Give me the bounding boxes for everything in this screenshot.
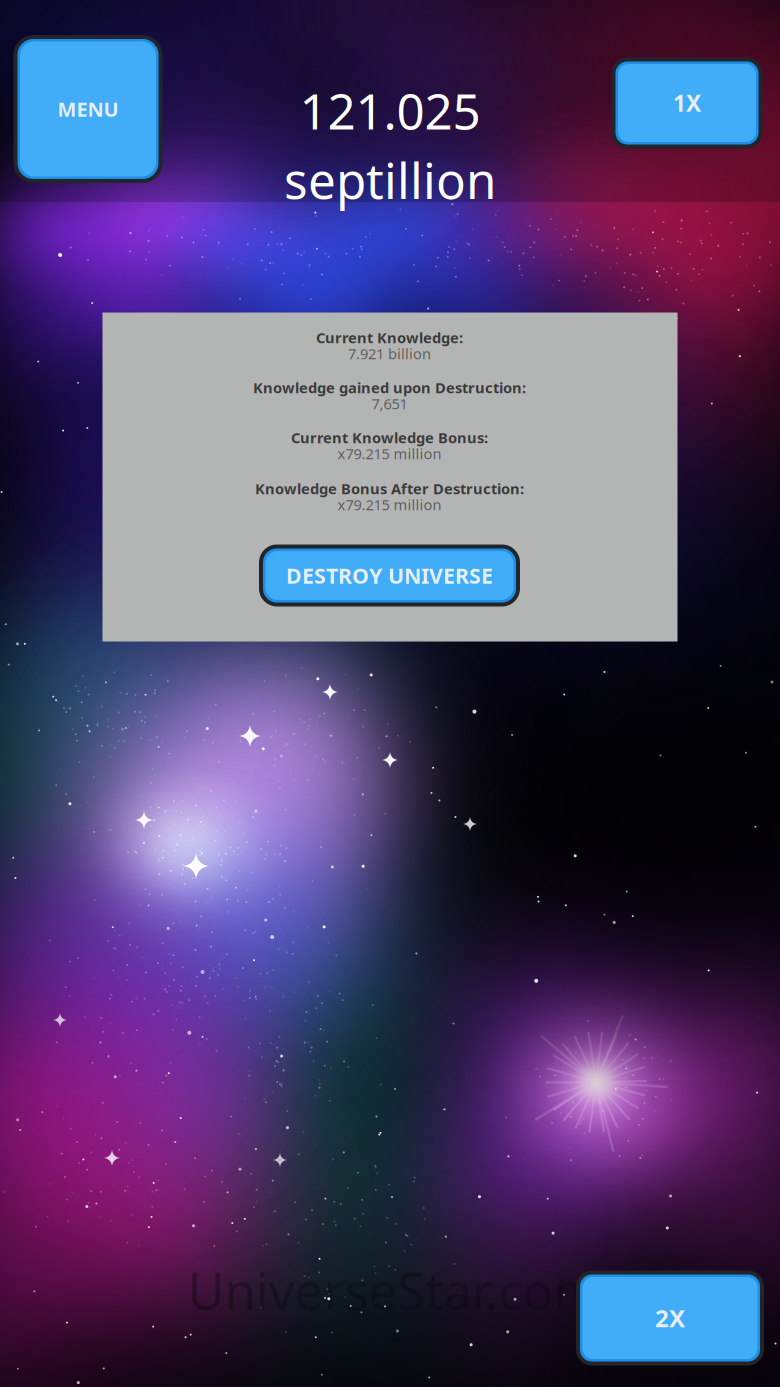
staticText: x79.215 million xyxy=(337,444,441,463)
staticText: 7,651 xyxy=(371,394,407,413)
staticText: Knowledge Bonus After Destruction: xyxy=(255,479,524,498)
staticText: Knowledge gained upon Destruction: xyxy=(253,378,526,397)
staticText: x79.215 million xyxy=(337,495,441,514)
staticText: 121.025 xyxy=(299,77,480,143)
staticText: 1X xyxy=(673,88,701,118)
staticText: UniverseStar.com xyxy=(187,1256,600,1324)
staticText: MENU xyxy=(57,96,118,122)
button[interactable]: MENU xyxy=(15,37,160,181)
staticText: septillion xyxy=(284,147,496,212)
staticText: 2X xyxy=(655,1302,685,1334)
staticText: Current Knowledge Bonus: xyxy=(291,428,488,447)
button[interactable]: 1X xyxy=(613,59,760,146)
button[interactable]: 2X xyxy=(578,1272,762,1363)
staticText: DESTROY UNIVERSE xyxy=(286,561,493,590)
button[interactable]: DESTROY UNIVERSE xyxy=(261,546,518,604)
staticText: Current Knowledge: xyxy=(316,328,463,347)
staticText: 7.921 billion xyxy=(348,344,431,363)
